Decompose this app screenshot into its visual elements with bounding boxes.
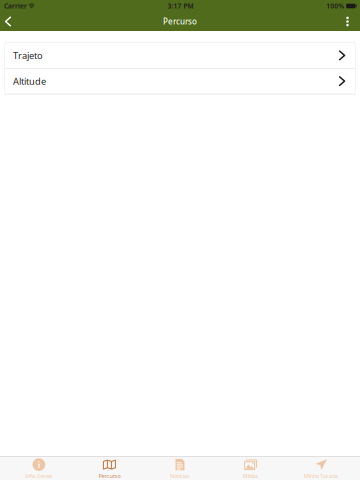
staticText: Mídias <box>243 472 259 479</box>
staticText: Altitude <box>13 75 46 87</box>
button[interactable]: More options <box>337 12 358 31</box>
staticText: Info. Gerais <box>25 472 53 479</box>
staticText: Carrier <box>4 2 27 10</box>
button[interactable]: Percurso <box>74 456 145 480</box>
button[interactable]: Altitude <box>4 69 355 94</box>
button[interactable]: Notícias <box>145 456 215 480</box>
staticText: 3:17 PM <box>167 2 193 10</box>
button[interactable]: Mídias <box>215 456 286 480</box>
staticText: Trajeto <box>13 49 43 62</box>
button[interactable]: Back <box>0 12 16 31</box>
staticText: Minha Tocada <box>304 472 338 479</box>
staticText: 100% <box>326 2 344 10</box>
button[interactable]: Info. Gerais <box>4 456 74 480</box>
staticText: Percurso <box>98 472 120 479</box>
button[interactable]: Trajeto <box>4 43 355 68</box>
staticText: Percurso <box>163 16 197 27</box>
button[interactable]: Minha Tocada <box>286 456 356 480</box>
staticText: Notícias <box>170 472 190 479</box>
